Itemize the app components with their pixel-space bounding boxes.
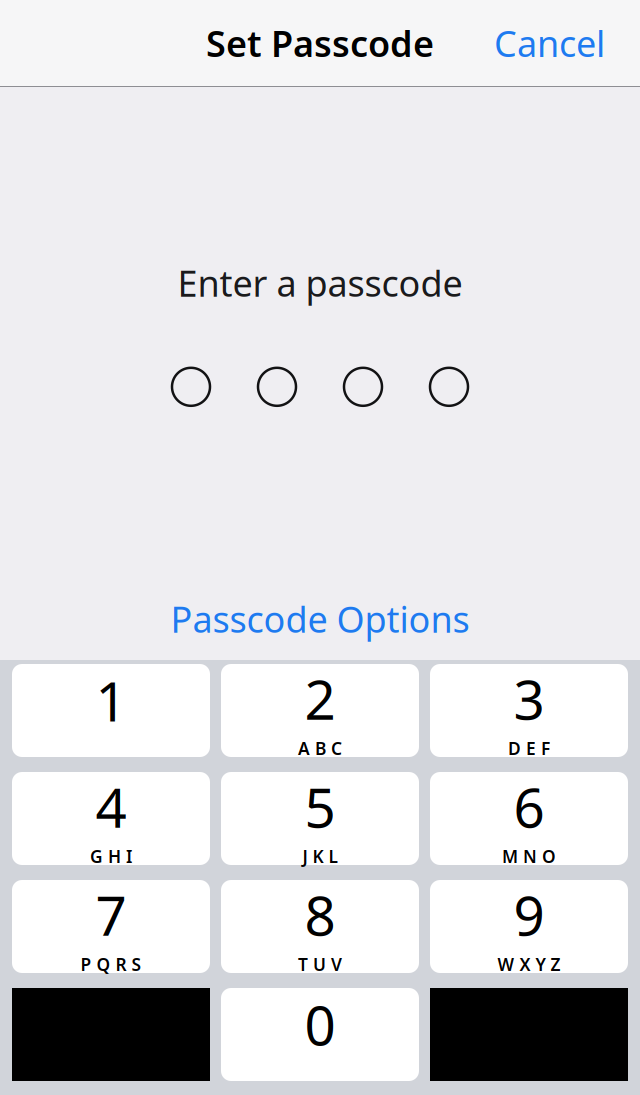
staticText: T U V <box>298 953 342 976</box>
staticText: 2 <box>304 662 335 735</box>
staticText: P Q R S <box>80 953 141 976</box>
button[interactable]: 2 <box>221 664 419 757</box>
staticText: 9 <box>513 878 544 951</box>
button[interactable]: 7 <box>12 880 210 973</box>
staticText: J K L <box>302 845 337 868</box>
button[interactable]: 1 <box>12 664 210 757</box>
staticText: Set Passcode <box>206 19 434 67</box>
staticText: W X Y Z <box>497 953 560 976</box>
staticText: Cancel <box>494 19 605 67</box>
button[interactable]: Passcode Options <box>150 587 489 651</box>
button[interactable]: 4 <box>12 772 210 865</box>
button[interactable]: 8 <box>221 880 419 973</box>
staticText: G H I <box>90 845 132 868</box>
button[interactable]: 6 <box>430 772 628 865</box>
staticText: A B C <box>298 737 342 760</box>
staticText: 3 <box>513 662 544 735</box>
staticText: 1 <box>95 664 126 737</box>
staticText: 4 <box>95 770 126 843</box>
button[interactable]: 3 <box>430 664 628 757</box>
staticText: M N O <box>502 845 556 868</box>
button[interactable]: 9 <box>430 880 628 973</box>
button[interactable]: 0 <box>221 988 419 1081</box>
staticText: 7 <box>95 878 126 951</box>
button[interactable]: 5 <box>221 772 419 865</box>
staticText: Enter a passcode <box>177 259 462 307</box>
staticText: D E F <box>508 737 550 760</box>
staticText: 8 <box>304 878 335 951</box>
staticText: Passcode Options <box>170 595 469 643</box>
staticText: 0 <box>304 988 335 1061</box>
staticText: 5 <box>304 770 335 843</box>
staticText: 6 <box>513 770 544 843</box>
button[interactable]: Cancel <box>478 7 621 79</box>
